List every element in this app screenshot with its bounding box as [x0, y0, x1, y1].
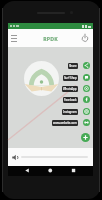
staticText: WhatsApp	[63, 87, 77, 91]
button[interactable]: Share	[68, 62, 90, 69]
staticText: Facebook	[64, 98, 77, 102]
button[interactable]: Surf Shop	[63, 74, 90, 81]
button[interactable]: Menu	[11, 34, 20, 43]
button[interactable]: Close menu	[81, 133, 90, 142]
staticText: Surf Shop	[64, 76, 77, 80]
button[interactable]: Instagram	[62, 108, 90, 115]
staticText: RPDK	[43, 35, 58, 42]
staticText: www.website.com	[53, 121, 77, 125]
button[interactable]: Facebook	[63, 96, 90, 103]
staticText: Share	[69, 64, 77, 68]
staticText: Instagram	[63, 110, 77, 114]
button[interactable]: Power	[80, 33, 90, 43]
button[interactable]: www.website.com	[52, 119, 90, 126]
button[interactable]: Mute	[12, 154, 19, 161]
button[interactable]: WhatsApp	[62, 85, 90, 92]
